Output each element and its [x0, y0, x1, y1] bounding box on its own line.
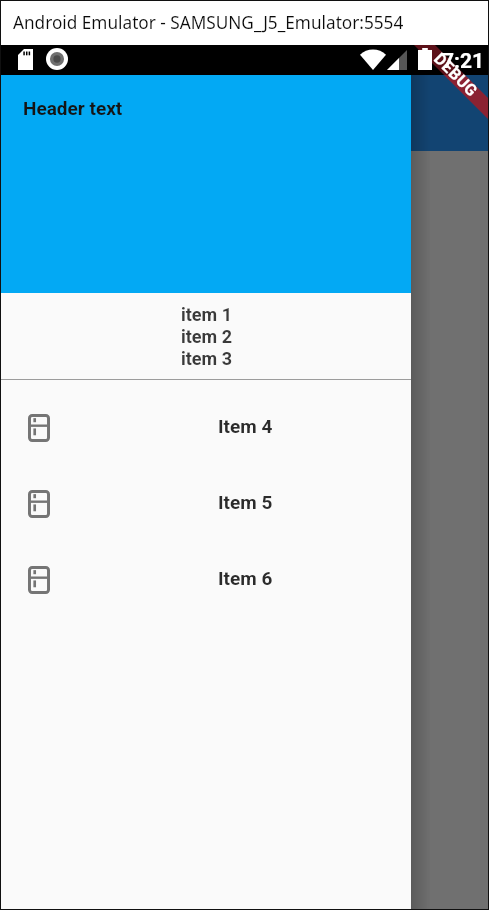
- other: Signal: [387, 50, 407, 70]
- staticText: Item 4: [218, 415, 273, 437]
- other: Battery: [418, 48, 432, 70]
- button[interactable]: Item 5: [1, 464, 411, 540]
- button[interactable]: item 3: [1, 347, 411, 369]
- staticText: Item 5: [218, 491, 273, 513]
- staticText: 7:21: [442, 49, 485, 74]
- other: Record: [46, 48, 68, 70]
- staticText: item 2: [181, 326, 232, 347]
- button[interactable]: item 1: [1, 303, 411, 325]
- staticText: Header text: [23, 97, 123, 119]
- button[interactable]: Item 4: [1, 388, 411, 464]
- button[interactable]: item 2: [1, 325, 411, 347]
- other: Wi-Fi: [360, 50, 386, 70]
- button[interactable]: Item 6: [1, 540, 411, 616]
- staticText: item 1: [181, 304, 232, 325]
- staticText: Android Emulator - SAMSUNG_J5_Emulator:5…: [13, 11, 404, 34]
- other: SD card: [18, 49, 33, 70]
- staticText: item 3: [181, 348, 232, 369]
- staticText: Item 6: [218, 567, 273, 589]
